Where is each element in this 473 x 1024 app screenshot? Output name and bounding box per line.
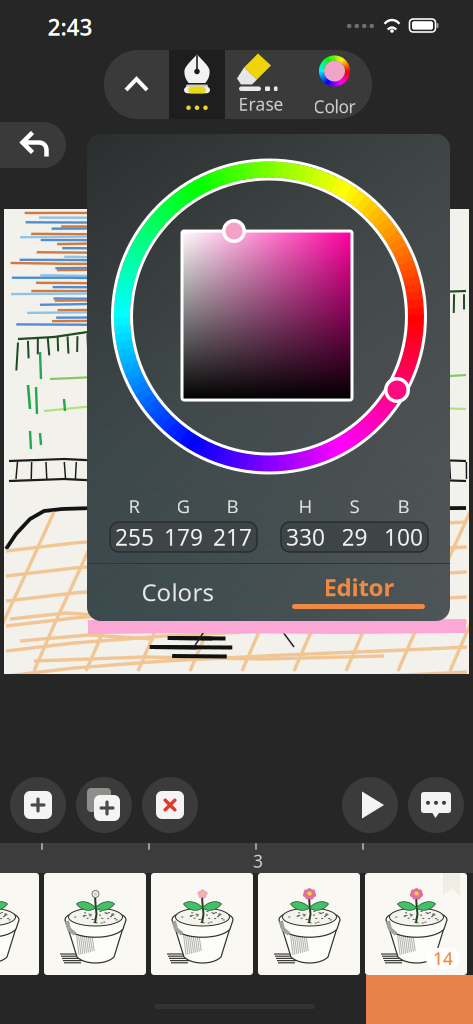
button[interactable]: Colors: [87, 563, 268, 621]
staticText: 179: [164, 522, 203, 552]
staticText: Color: [313, 95, 355, 118]
button[interactable]: Collapse toolbar: [104, 50, 169, 119]
staticText: Colors: [141, 576, 213, 608]
staticText: H: [298, 494, 312, 518]
staticText: S: [349, 494, 359, 518]
button[interactable]: Frame 1: [0, 873, 39, 975]
staticText: B: [226, 494, 238, 518]
staticText: 255: [115, 522, 154, 552]
staticText: 2:43: [47, 12, 92, 42]
button[interactable]: Add frame: [10, 777, 66, 833]
staticText: Editor: [323, 571, 394, 603]
staticText: Erase: [238, 92, 283, 115]
staticText: R: [128, 494, 140, 518]
button[interactable]: Frame 4: [258, 873, 360, 975]
staticText: 3: [253, 849, 263, 872]
staticText: 14: [433, 947, 453, 970]
button[interactable]: Pen tool: [169, 50, 225, 119]
staticText: 217: [213, 522, 252, 552]
button[interactable]: Color: [297, 50, 372, 119]
button[interactable]: Duplicate frame: [76, 777, 132, 833]
button[interactable]: Frame 2: [44, 873, 146, 975]
button[interactable]: Editor: [268, 563, 450, 621]
button[interactable]: Delete frame: [142, 777, 198, 833]
staticText: 29: [341, 522, 367, 552]
button[interactable]: Frame 5: [365, 873, 467, 975]
staticText: B: [397, 494, 409, 518]
staticText: 330: [286, 522, 325, 552]
button[interactable]: Erase: [225, 50, 297, 119]
staticText: G: [176, 494, 190, 518]
button[interactable]: Undo: [0, 122, 66, 168]
button[interactable]: Frame 3: [151, 873, 253, 975]
staticText: 100: [384, 522, 423, 552]
button[interactable]: Comments: [408, 777, 464, 833]
button[interactable]: Play: [342, 777, 398, 833]
